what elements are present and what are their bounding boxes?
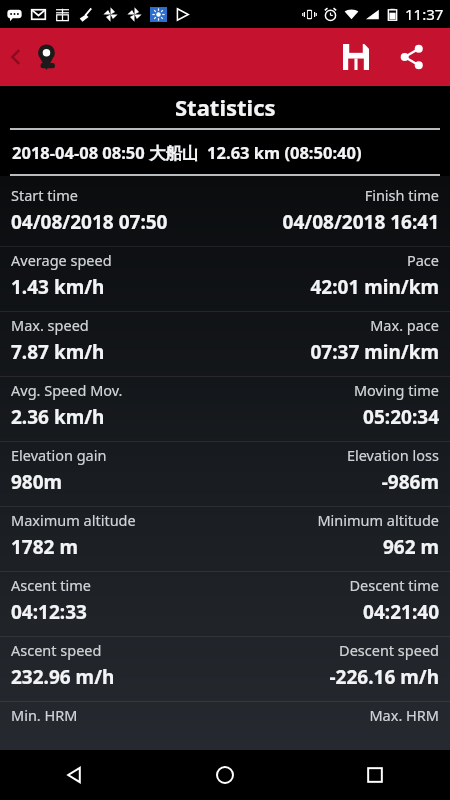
button[interactable]: Ascent time	[0, 572, 450, 636]
staticText: 980m	[11, 469, 63, 495]
staticText: 2.36 km/h	[11, 404, 105, 430]
staticText: Avg. Speed Mov.	[11, 380, 123, 400]
button[interactable]: Average speed	[0, 247, 450, 311]
staticText: Descent time	[349, 575, 439, 595]
staticText: 232.96 m/h	[11, 664, 115, 690]
staticText: Min. HRM	[11, 705, 78, 725]
staticText: 42:01 min/km	[310, 274, 439, 300]
staticText: Start time	[11, 185, 79, 205]
staticText: Statistics	[175, 92, 276, 122]
staticText: 1782 m	[11, 534, 78, 560]
staticText: 04/08/2018 07:50	[11, 209, 168, 235]
staticText: -226.16 m/h	[329, 664, 439, 690]
staticText: Max. speed	[11, 315, 89, 335]
staticText: Minimum altitude	[317, 510, 439, 530]
staticText: Maximum altitude	[11, 510, 136, 530]
button[interactable]: Elevation gain	[0, 442, 450, 506]
button[interactable]: Max. speed	[0, 312, 450, 376]
staticText: Ascent time	[11, 575, 92, 595]
staticText: Finish time	[364, 185, 439, 205]
staticText: Max. HRM	[369, 705, 439, 725]
button[interactable]: Avg. Speed Mov.	[0, 377, 450, 441]
button[interactable]: Min. HRM	[0, 702, 450, 750]
button[interactable]: Start time	[0, 182, 450, 246]
staticText: 07:37 min/km	[310, 339, 439, 365]
staticText: 2018-04-08 08:50 大船山 12.63 km (08:50:40)	[12, 141, 362, 164]
button[interactable]: Save	[328, 29, 384, 85]
button[interactable]: Ascent speed	[0, 637, 450, 701]
staticText: -986m	[381, 469, 439, 495]
staticText: Max. pace	[370, 315, 439, 335]
staticText: 04/08/2018 16:41	[282, 209, 439, 235]
staticText: Elevation loss	[346, 445, 439, 465]
button[interactable]: Back	[0, 750, 150, 800]
staticText: 962 m	[382, 534, 439, 560]
staticText: 1.43 km/h	[11, 274, 105, 300]
staticText: Pace	[406, 250, 439, 270]
staticText: 7.87 km/h	[11, 339, 105, 365]
staticText: 04:21:40	[363, 599, 439, 625]
button[interactable]: Recent apps	[300, 750, 450, 800]
button[interactable]: Navigate up	[0, 28, 78, 86]
staticText: Ascent speed	[11, 640, 102, 660]
staticText: Average speed	[11, 250, 112, 270]
staticText: 04:12:33	[11, 599, 87, 625]
staticText: Moving time	[353, 380, 439, 400]
button[interactable]: Share	[384, 29, 440, 85]
button[interactable]: Maximum altitude	[0, 507, 450, 571]
staticText: Descent speed	[339, 640, 439, 660]
button[interactable]: Home	[150, 750, 300, 800]
staticText: Elevation gain	[11, 445, 107, 465]
staticText: 05:20:34	[363, 404, 439, 430]
staticText: 11:37	[405, 4, 444, 24]
